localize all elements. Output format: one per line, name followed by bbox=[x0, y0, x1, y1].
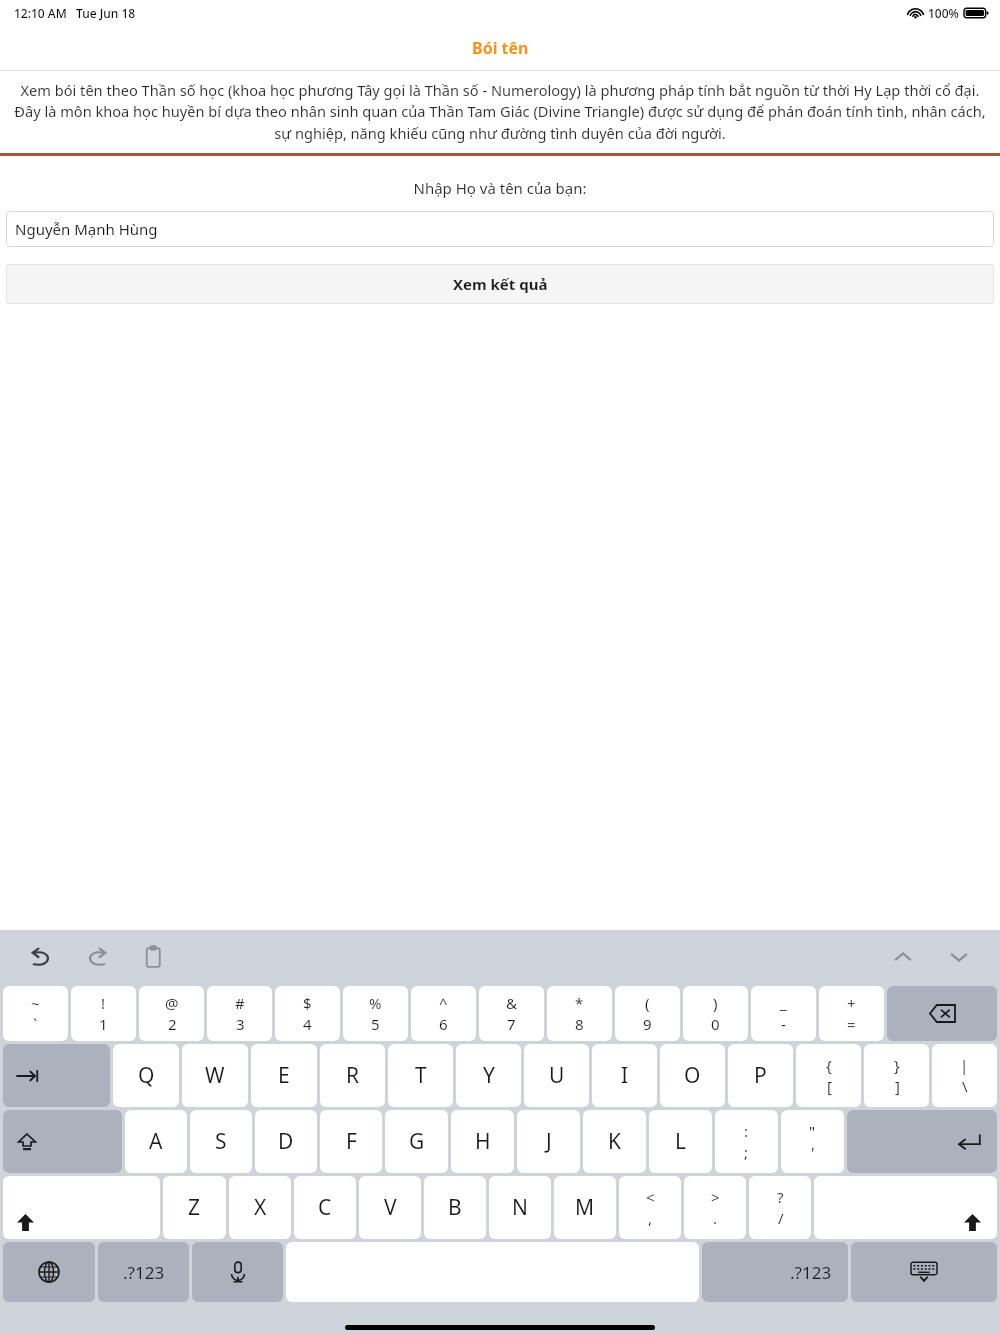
button[interactable]: J bbox=[517, 1110, 580, 1173]
button[interactable]: Z bbox=[163, 1176, 226, 1239]
button[interactable]: Q bbox=[113, 1044, 179, 1107]
staticText: 9 bbox=[643, 1014, 652, 1034]
button[interactable]: V bbox=[359, 1176, 421, 1239]
button[interactable]: L bbox=[649, 1110, 712, 1173]
staticText: B bbox=[448, 1193, 462, 1222]
button[interactable]: N bbox=[489, 1176, 551, 1239]
button[interactable]: ) bbox=[683, 986, 748, 1041]
button[interactable]: " bbox=[781, 1110, 844, 1173]
button[interactable]: P bbox=[728, 1044, 793, 1107]
staticText: H bbox=[475, 1127, 491, 1156]
staticText: 100% bbox=[928, 5, 959, 21]
button[interactable]: ? bbox=[749, 1176, 811, 1239]
staticText: A bbox=[149, 1127, 163, 1156]
button[interactable]: H bbox=[451, 1110, 514, 1173]
staticText: P bbox=[754, 1061, 767, 1090]
button[interactable]: Undo bbox=[24, 940, 58, 974]
button[interactable]: Next bbox=[942, 940, 976, 974]
button[interactable]: Paste bbox=[136, 940, 170, 974]
button[interactable]: } bbox=[864, 1044, 929, 1107]
button[interactable]: Tab bbox=[3, 1044, 110, 1107]
staticText: + bbox=[847, 993, 856, 1013]
button[interactable]: Shift bbox=[3, 1176, 160, 1239]
button[interactable]: E bbox=[251, 1044, 317, 1107]
button[interactable]: M bbox=[554, 1176, 616, 1239]
staticText: 3 bbox=[236, 1014, 245, 1034]
staticText: 4 bbox=[303, 1014, 312, 1034]
staticText: $ bbox=[303, 993, 312, 1013]
button[interactable]: : bbox=[715, 1110, 778, 1173]
staticText: 8 bbox=[575, 1014, 584, 1034]
button[interactable]: F bbox=[320, 1110, 382, 1173]
staticText: ( bbox=[645, 993, 650, 1013]
button[interactable]: K bbox=[583, 1110, 646, 1173]
button[interactable]: { bbox=[796, 1044, 861, 1107]
button[interactable]: W bbox=[182, 1044, 248, 1107]
button[interactable]: Next keyboard bbox=[3, 1242, 95, 1302]
staticText: L bbox=[675, 1127, 687, 1156]
staticText: G bbox=[409, 1127, 425, 1156]
staticText: E bbox=[278, 1061, 290, 1090]
staticText: % bbox=[369, 993, 382, 1013]
button[interactable]: + bbox=[819, 986, 884, 1041]
button[interactable]: Caps lock bbox=[3, 1110, 122, 1173]
button[interactable]: S bbox=[190, 1110, 252, 1173]
button[interactable]: Nguyễn Mạnh Hùng bbox=[6, 211, 994, 247]
button[interactable]: Return bbox=[847, 1110, 997, 1173]
staticText: Z bbox=[188, 1193, 201, 1222]
button[interactable]: T bbox=[388, 1044, 453, 1107]
button[interactable]: ~ bbox=[3, 986, 68, 1041]
button[interactable]: Redo bbox=[80, 940, 114, 974]
button[interactable]: I bbox=[592, 1044, 657, 1107]
button[interactable]: * bbox=[547, 986, 612, 1041]
staticText: " bbox=[809, 1121, 816, 1141]
button[interactable]: D bbox=[255, 1110, 317, 1173]
button[interactable]: .?123 bbox=[702, 1242, 848, 1302]
staticText: | bbox=[960, 1055, 969, 1075]
staticText: T bbox=[415, 1061, 427, 1090]
staticText: > bbox=[711, 1187, 720, 1207]
staticText: # bbox=[235, 993, 245, 1013]
button[interactable]: & bbox=[479, 986, 544, 1041]
button[interactable]: | bbox=[932, 1044, 997, 1107]
button[interactable]: C bbox=[294, 1176, 356, 1239]
button[interactable]: _ bbox=[751, 986, 816, 1041]
button[interactable]: % bbox=[343, 986, 408, 1041]
button[interactable]: < bbox=[619, 1176, 681, 1239]
button[interactable]: B bbox=[424, 1176, 486, 1239]
button[interactable]: Xem kết quả bbox=[6, 264, 994, 304]
staticText: W bbox=[205, 1061, 225, 1090]
button[interactable]: @ bbox=[139, 986, 204, 1041]
button[interactable]: ! bbox=[71, 986, 136, 1041]
staticText: K bbox=[608, 1127, 621, 1156]
button[interactable]: U bbox=[524, 1044, 589, 1107]
button[interactable]: ( bbox=[615, 986, 680, 1041]
button[interactable]: G bbox=[385, 1110, 448, 1173]
button[interactable]: Previous bbox=[886, 940, 920, 974]
staticText: 0 bbox=[711, 1014, 720, 1034]
staticText: : bbox=[744, 1121, 749, 1141]
button[interactable]: $ bbox=[275, 986, 340, 1041]
button[interactable]: Dictation bbox=[192, 1242, 283, 1302]
button[interactable]: > bbox=[684, 1176, 746, 1239]
button[interactable]: Shift bbox=[814, 1176, 997, 1239]
staticText: S bbox=[215, 1127, 227, 1156]
staticText: Bói tên bbox=[472, 37, 529, 59]
button[interactable]: # bbox=[207, 986, 272, 1041]
button[interactable]: Hide keyboard bbox=[851, 1242, 997, 1302]
button[interactable]: ^ bbox=[411, 986, 476, 1041]
staticText: ~ bbox=[31, 993, 40, 1013]
button[interactable]: X bbox=[229, 1176, 291, 1239]
staticText: - bbox=[781, 1014, 786, 1034]
staticText: ] bbox=[895, 1076, 900, 1096]
staticText: / bbox=[778, 1208, 784, 1228]
button[interactable]: R bbox=[320, 1044, 385, 1107]
button[interactable]: .?123 bbox=[98, 1242, 189, 1302]
button[interactable]: Backspace bbox=[887, 986, 997, 1041]
button[interactable]: O bbox=[660, 1044, 725, 1107]
button[interactable]: Y bbox=[456, 1044, 521, 1107]
staticText: 6 bbox=[439, 1014, 448, 1034]
button[interactable]: A bbox=[125, 1110, 187, 1173]
staticText: 5 bbox=[371, 1014, 380, 1034]
